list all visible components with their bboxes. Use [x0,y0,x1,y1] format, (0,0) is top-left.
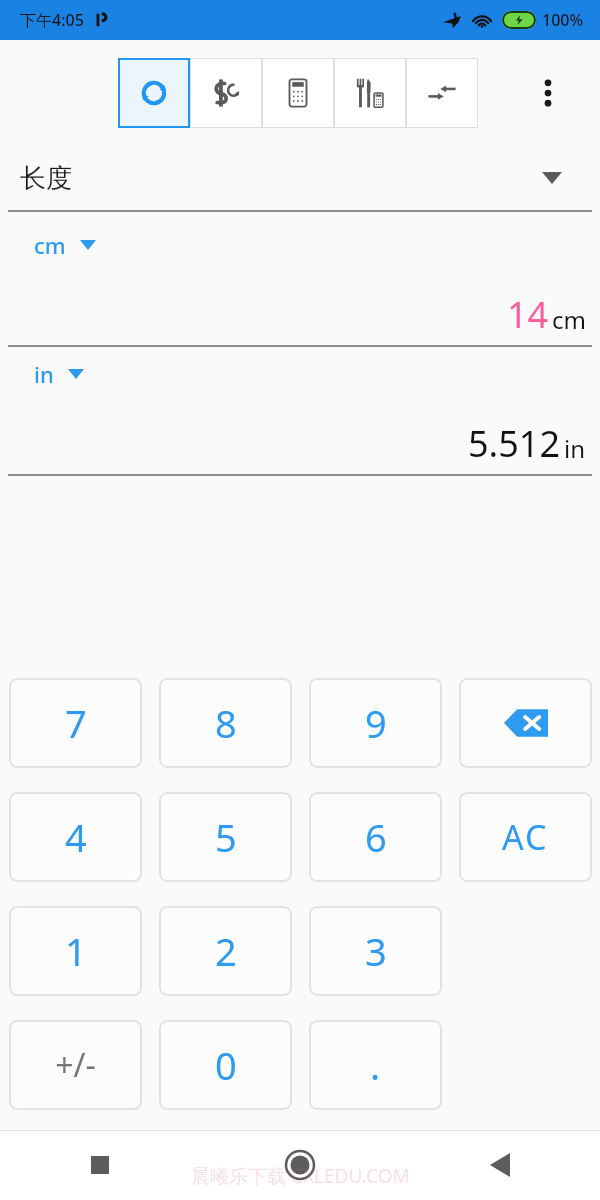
button[interactable]: Backspace [459,678,592,768]
staticText: 长度 [20,162,72,195]
button[interactable]: More options [526,71,570,115]
button[interactable]: in [34,359,84,389]
button[interactable]: AC [459,792,592,882]
button[interactable]: 7 [9,678,142,768]
staticText: 6 [365,811,387,863]
button[interactable]: . [309,1020,442,1110]
button[interactable]: Unit converter [118,58,190,128]
staticText: cm [34,230,66,260]
button[interactable]: 3 [309,906,442,996]
button[interactable]: 4 [9,792,142,882]
staticText: 9 [365,697,387,749]
staticText: 3 [365,925,387,977]
staticText: 5 [215,811,237,863]
staticText: cm [552,303,586,336]
button[interactable]: Recent apps [78,1143,122,1187]
staticText: 100% [542,9,584,31]
button[interactable]: 9 [309,678,442,768]
button[interactable]: 长度 [0,146,600,210]
button[interactable]: +/- [9,1020,142,1110]
button[interactable]: 8 [159,678,292,768]
staticText: 14 [507,290,549,339]
button[interactable]: cm [34,230,96,260]
staticText: 8 [215,697,237,749]
button[interactable]: Back [478,1143,522,1187]
staticText: in [564,432,586,465]
staticText: 下午4:05 [20,9,84,31]
staticText: 5.512 [468,419,561,468]
staticText: 晨曦乐下载 CXLEDU.COM [191,1163,410,1189]
button[interactable]: 2 [159,906,292,996]
staticText: +/- [55,1043,96,1087]
staticText: 0 [215,1039,237,1091]
button[interactable]: 5 [159,792,292,882]
staticText: in [34,359,54,389]
button[interactable]: Tool [262,58,334,128]
button[interactable]: Home [277,1142,323,1188]
staticText: 1 [65,925,87,977]
button[interactable]: Tool [406,58,478,128]
staticText: . [370,1039,381,1091]
staticText: 2 [215,925,237,977]
button[interactable]: 1 [9,906,142,996]
button[interactable]: 6 [309,792,442,882]
staticText: AC [502,814,549,860]
button[interactable]: Tool [334,58,406,128]
staticText: 7 [65,697,87,749]
button[interactable]: 0 [159,1020,292,1110]
button[interactable]: Tool [190,58,262,128]
staticText: 4 [65,811,87,863]
